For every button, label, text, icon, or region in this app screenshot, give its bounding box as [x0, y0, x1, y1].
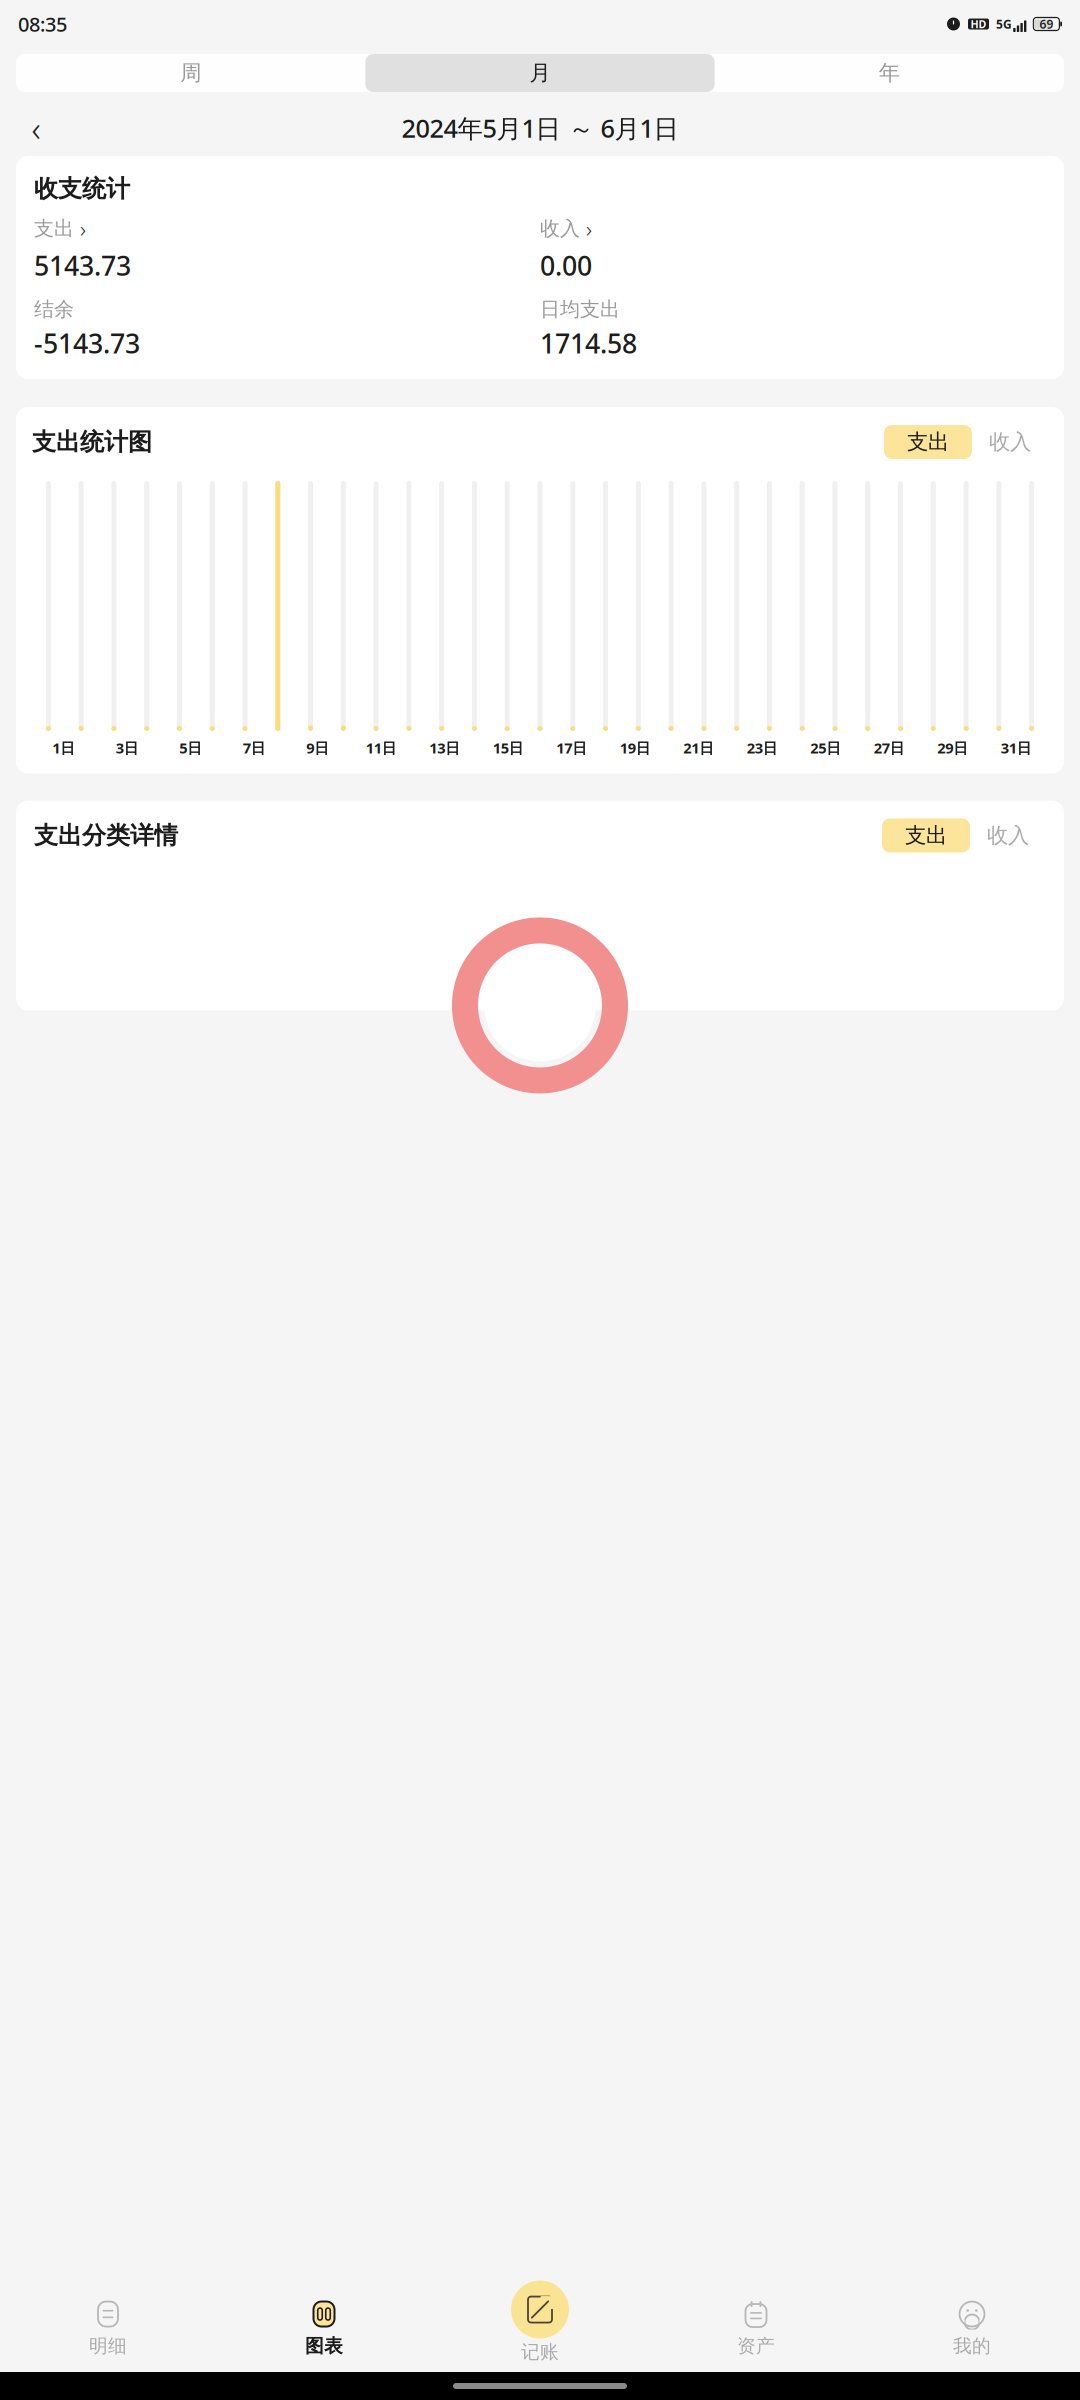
staticText: 5日 [179, 738, 202, 757]
staticText: 图表 [305, 2334, 343, 2357]
staticText: 9日 [306, 738, 329, 757]
button[interactable]: 图表 [216, 2298, 432, 2360]
button[interactable]: 周 [16, 54, 365, 92]
staticText: 收入 [989, 429, 1031, 455]
staticText: HD [970, 17, 986, 31]
staticText: 29日 [937, 738, 968, 757]
staticText: 日均支出 [540, 297, 620, 322]
button[interactable]: 收入 [972, 425, 1048, 459]
staticText: ‹ [31, 105, 40, 151]
staticText: 3日 [116, 738, 139, 757]
staticText: 31日 [1001, 738, 1032, 757]
staticText: 资产 [737, 2334, 775, 2357]
button[interactable]: 记账 [432, 2298, 648, 2360]
button[interactable]: 收入 [540, 213, 592, 244]
staticText: 支出 [905, 822, 947, 848]
staticText: 我的 [953, 2334, 991, 2357]
staticText: 0.00 [540, 248, 592, 283]
button[interactable]: 我的 [864, 2298, 1080, 2360]
staticText: 结余 [34, 297, 74, 322]
staticText: 月 [529, 60, 550, 86]
staticText: 69 [1039, 16, 1053, 32]
button[interactable]: 支出 [34, 213, 86, 244]
staticText: 支出统计图 [32, 427, 152, 457]
staticText: 周 [180, 60, 201, 86]
staticText: 收入 [987, 822, 1029, 848]
staticText: 5143.73 [34, 248, 131, 283]
staticText: 25日 [810, 738, 841, 757]
staticText: 支出 [907, 429, 949, 455]
button[interactable]: 资产 [648, 2298, 864, 2360]
button[interactable]: 支出 [884, 425, 972, 459]
button[interactable]: 上一个月 [16, 108, 56, 148]
staticText: 7日 [243, 738, 266, 757]
staticText: 08:35 [18, 11, 67, 37]
staticText: › [80, 213, 86, 244]
button[interactable]: 年 [715, 54, 1064, 92]
staticText: 2024年5月1日 ～ 6月1日 [401, 111, 678, 145]
staticText: 27日 [874, 738, 905, 757]
staticText: 21日 [683, 738, 714, 757]
staticText: 15日 [493, 738, 524, 757]
staticText: 23日 [747, 738, 778, 757]
staticText: 收入 [540, 216, 580, 241]
staticText: 1日 [52, 738, 75, 757]
staticText: -5143.73 [34, 326, 140, 361]
button[interactable]: 收入 [970, 818, 1046, 852]
staticText: 记账 [521, 2340, 559, 2363]
button[interactable]: 月 [365, 54, 715, 92]
button[interactable]: 明细 [0, 2298, 216, 2360]
button[interactable]: 支出 [882, 818, 970, 852]
staticText: 1714.58 [540, 326, 637, 361]
staticText: 支出分类详情 [34, 821, 178, 850]
staticText: 5G [996, 16, 1012, 32]
staticText: 收支统计 [34, 174, 130, 203]
staticText: 13日 [429, 738, 460, 757]
staticText: 19日 [620, 738, 651, 757]
staticText: 支出 [34, 216, 74, 241]
staticText: 17日 [556, 738, 587, 757]
staticText: 年 [879, 60, 900, 86]
staticText: 11日 [366, 738, 397, 757]
staticText: › [586, 213, 592, 244]
staticText: 明细 [89, 2334, 127, 2357]
